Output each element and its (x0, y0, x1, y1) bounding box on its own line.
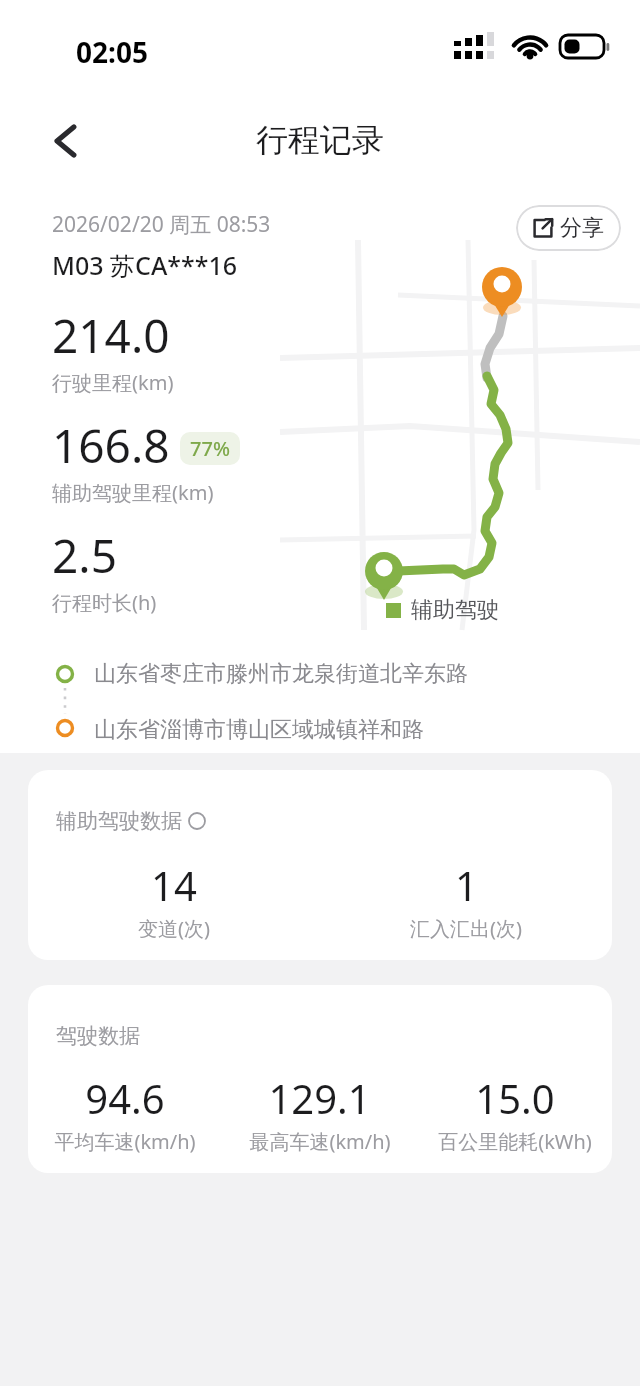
staticText: 2.5 (52, 524, 117, 587)
staticText: 214.0 (52, 304, 170, 367)
staticText: 行程记录 (0, 120, 640, 160)
staticText: 驾驶数据 (56, 1023, 140, 1049)
staticText: 15.0 (475, 1071, 555, 1125)
staticText: 129.1 (268, 1071, 371, 1125)
staticText: 辅助驾驶里程(km) (52, 479, 214, 506)
staticText: 辅助驾驶 (411, 596, 499, 624)
staticText: 行驶里程(km) (52, 369, 174, 396)
staticText: M03 苏CA***16 (52, 248, 238, 282)
staticText: 分享 (560, 214, 604, 242)
staticText: 1 (455, 858, 478, 912)
staticText: 166.8 (52, 414, 170, 477)
button[interactable]: 驾驶数据 (28, 985, 612, 1173)
staticText: 77% (190, 435, 230, 462)
button[interactable]: 辅助驾驶数据 (28, 770, 612, 960)
button[interactable]: 分享 (516, 205, 621, 251)
staticText: 百公里能耗(kWh) (438, 1128, 592, 1155)
staticText: 平均车速(km/h) (54, 1128, 196, 1155)
staticText: 02:05 (76, 33, 148, 71)
staticText: 最高车速(km/h) (249, 1128, 391, 1155)
staticText: 辅助驾驶数据 (56, 808, 182, 834)
staticText: 14 (151, 858, 197, 912)
staticText: 汇入汇出(次) (410, 915, 522, 942)
staticText: 94.6 (85, 1071, 165, 1125)
staticText: 山东省枣庄市滕州市龙泉街道北辛东路 (94, 660, 468, 688)
staticText: 2026/02/20 周五 08:53 (52, 210, 271, 239)
staticText: 山东省淄博市博山区域城镇祥和路 (94, 716, 424, 744)
staticText: 行程时长(h) (52, 589, 157, 616)
staticText: 变道(次) (138, 915, 210, 942)
button[interactable]: Back (38, 113, 94, 169)
